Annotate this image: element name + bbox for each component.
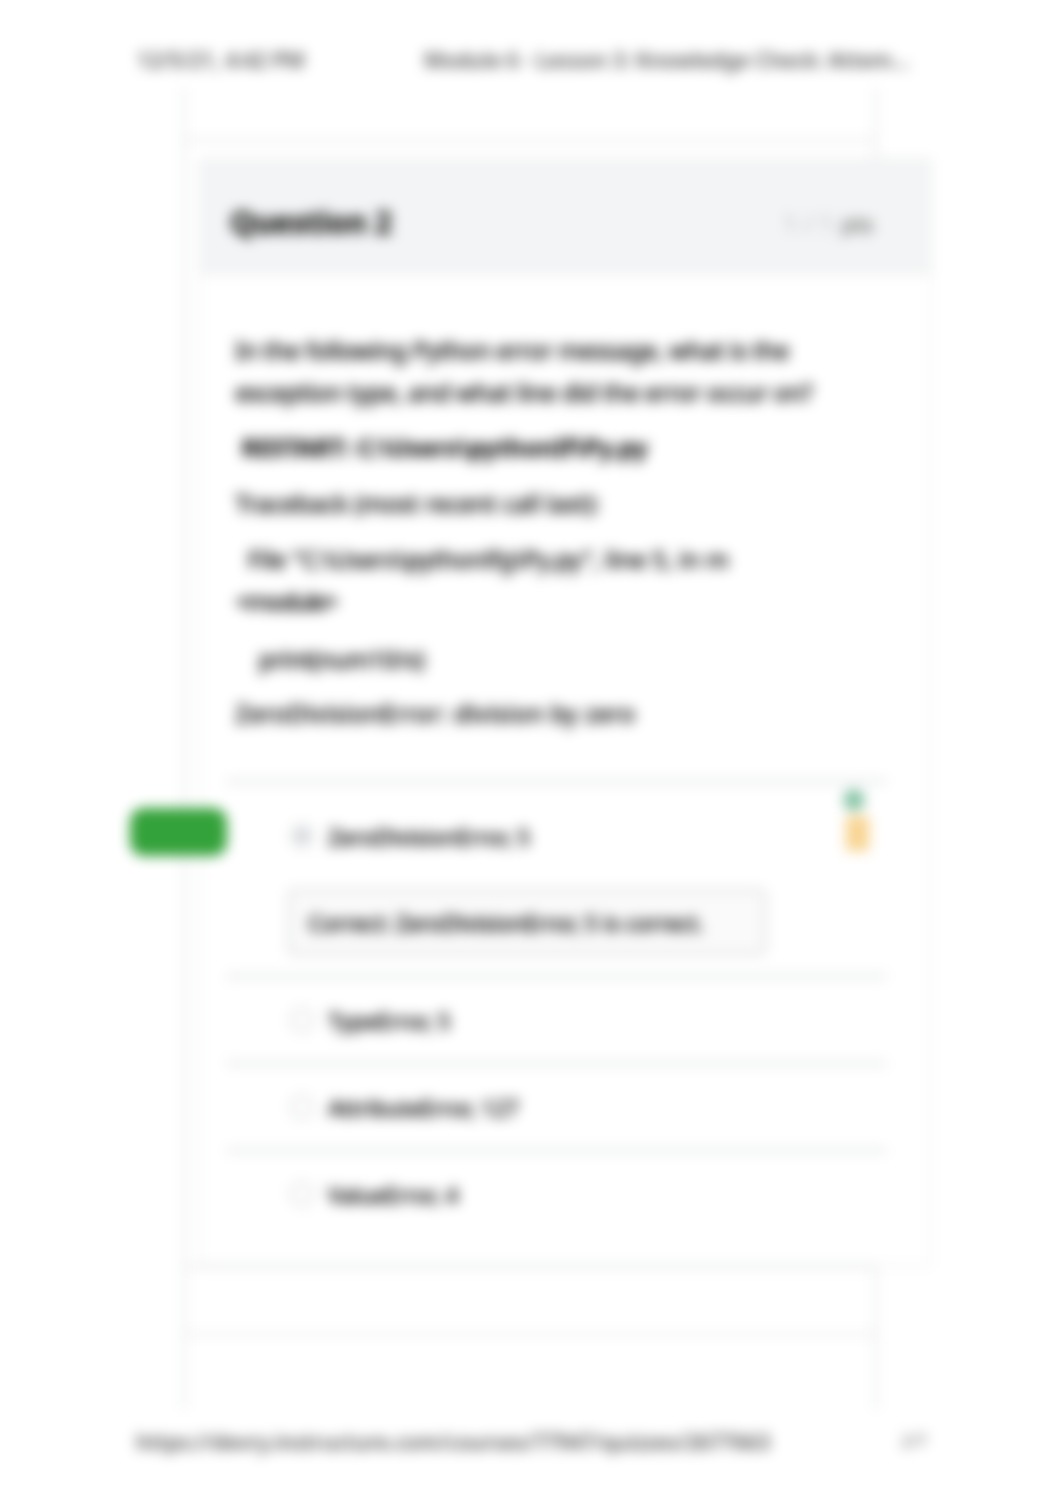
staticText: print(num10/x): [235, 643, 424, 676]
staticText: Traceback (most recent call last):: [235, 486, 600, 519]
button[interactable]: Correct: [130, 808, 227, 856]
staticText: ZeroDivisionError: division by zero: [235, 696, 636, 729]
staticText: ZeroDivisionError, 5: [328, 822, 530, 852]
button[interactable]: TypeError, 5: [200, 979, 931, 1061]
staticText: pts: [841, 209, 874, 239]
staticText: pts: [842, 208, 875, 238]
other: Answer marker: [834, 772, 884, 864]
staticText: ZeroDivisionError, 5: [328, 821, 530, 851]
staticText: Question 2: [230, 201, 392, 242]
staticText: Traceback (most recent call last):: [235, 487, 600, 520]
staticText: 12/5/21, 4:42 PM: [137, 46, 305, 75]
button[interactable]: Correct: ZeroDivisionError, 5 is correct…: [288, 889, 766, 955]
staticText: Traceback (most recent call last):: [236, 486, 601, 519]
staticText: Question 2: [231, 201, 393, 242]
staticText: TypeError, 5: [329, 1005, 451, 1035]
staticText: <module>: [235, 585, 337, 618]
button[interactable]: ZeroDivisionError, 5: [200, 795, 931, 877]
staticText: TypeError, 5: [328, 1005, 450, 1035]
staticText: ZeroDivisionError: division by zero: [236, 696, 637, 729]
staticText: In the following Python error message, w…: [235, 333, 789, 366]
staticText: exception type, and what line did the er…: [236, 375, 813, 408]
button[interactable]: ValueError, 4: [200, 1153, 931, 1235]
staticText: print(num10/x): [236, 642, 425, 675]
staticText: ZeroDivisionError, 5: [329, 821, 531, 851]
staticText: 1 / 1: [783, 206, 841, 240]
staticText: 2/7: [901, 1429, 927, 1452]
staticText: ValueError, 4: [328, 1179, 458, 1209]
staticText: File "C:\Users\pythonlfg\Py.py", line 5,…: [235, 542, 729, 575]
staticText: print(num10/x): [235, 642, 424, 675]
staticText: AttributeError, 127: [328, 1092, 519, 1122]
staticText: In the following Python error message, w…: [236, 333, 790, 366]
staticText: RESTART: C:\Users\pythonIf\Py.py: [235, 430, 648, 463]
staticText: AttributeError, 127: [328, 1093, 519, 1123]
staticText: pts: [841, 208, 874, 238]
staticText: File "C:\Users\pythonlfg\Py.py", line 5,…: [236, 542, 730, 575]
staticText: exception type, and what line did the er…: [235, 376, 812, 409]
staticText: TypeError, 5: [328, 1006, 450, 1036]
staticText: Correct: ZeroDivisionError, 5 is correct…: [308, 908, 704, 938]
staticText: Correct: ZeroDivisionError, 5 is correct…: [308, 907, 704, 937]
staticText: AttributeError, 127: [329, 1092, 520, 1122]
staticText: File "C:\Users\pythonlfg\Py.py", line 5,…: [235, 543, 729, 576]
staticText: Correct: ZeroDivisionError, 5 is correct…: [309, 907, 705, 937]
staticText: RESTART: C:\Users\pythonIf\Py.py: [236, 430, 649, 463]
staticText: https://devry.instructure.com/courses/77…: [136, 1428, 771, 1457]
staticText: exception type, and what line did the er…: [235, 375, 812, 408]
staticText: Question 2: [230, 202, 392, 243]
staticText: RESTART: C:\Users\pythonIf\Py.py: [235, 431, 648, 464]
button[interactable]: Question 2: [200, 159, 931, 274]
button[interactable]: AttributeError, 127: [200, 1066, 931, 1148]
staticText: <module>: [235, 584, 337, 617]
staticText: In the following Python error message, w…: [235, 334, 789, 367]
staticText: ValueError, 4: [329, 1179, 459, 1209]
staticText: <module>: [236, 584, 338, 617]
staticText: ZeroDivisionError: division by zero: [235, 697, 636, 730]
staticText: Module 6 - Lesson 3: Knowledge Check: At…: [424, 46, 910, 75]
staticText: ValueError, 4: [328, 1180, 458, 1210]
